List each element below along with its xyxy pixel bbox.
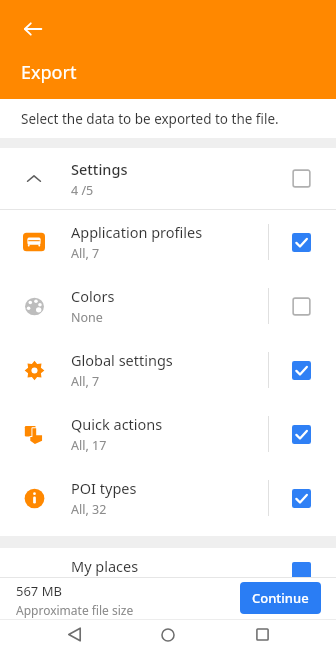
staticText: Continue — [252, 589, 309, 607]
button[interactable]: Toggle Application profiles — [292, 233, 311, 252]
staticText: 567 MB — [16, 582, 62, 600]
staticText: My places — [71, 556, 139, 576]
staticText: Select the data to be exported to the fi… — [21, 110, 279, 128]
button[interactable]: Toggle Colors — [292, 297, 311, 316]
button[interactable]: Application profiles — [0, 210, 336, 274]
button[interactable]: Continue — [240, 582, 321, 614]
button[interactable]: Toggle Quick actions — [292, 425, 311, 444]
staticText: Application profiles — [71, 222, 203, 242]
button[interactable]: Recent apps — [242, 619, 282, 650]
button[interactable]: POI types — [0, 466, 336, 530]
button[interactable]: Toggle Global settings — [292, 361, 311, 380]
button[interactable]: Back — [13, 9, 53, 49]
button[interactable]: Settings — [0, 148, 336, 209]
staticText: Settings — [71, 159, 128, 179]
staticText: All, 7 — [71, 373, 100, 390]
button[interactable]: Toggle POI types — [292, 489, 311, 508]
button[interactable]: Colors — [0, 274, 336, 338]
button[interactable]: Global settings — [0, 338, 336, 402]
staticText: None — [71, 309, 103, 326]
button[interactable]: Back — [54, 619, 94, 650]
staticText: POI types — [71, 478, 137, 498]
staticText: All, 32 — [71, 501, 107, 518]
staticText: All, 7 — [71, 245, 100, 262]
staticText: 4 /5 — [71, 182, 94, 199]
staticText: Colors — [71, 286, 115, 306]
staticText: All, 17 — [71, 437, 107, 454]
button[interactable]: Home — [148, 619, 188, 650]
staticText: Export — [21, 60, 77, 85]
staticText: Approximate file size — [16, 602, 134, 618]
staticText: Quick actions — [71, 414, 163, 434]
button[interactable]: Quick actions — [0, 402, 336, 466]
staticText: Global settings — [71, 350, 173, 370]
